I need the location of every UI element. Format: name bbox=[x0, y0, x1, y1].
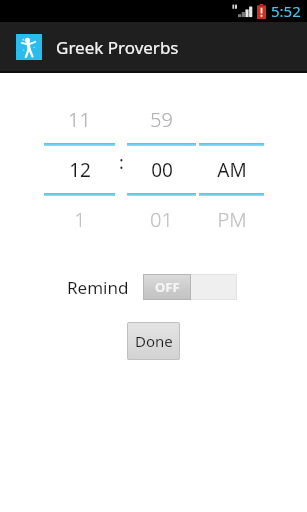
staticText: : bbox=[119, 150, 124, 175]
staticText: 5:52 bbox=[271, 1, 301, 21]
other: App icon bbox=[16, 34, 42, 60]
staticText: 11 bbox=[68, 106, 91, 133]
button[interactable]: Done bbox=[127, 322, 180, 360]
staticText: 12 bbox=[69, 157, 91, 183]
staticText: 1 bbox=[74, 206, 86, 233]
staticText: Greek Proverbs bbox=[56, 36, 179, 59]
button[interactable]: AM PM bbox=[199, 101, 264, 236]
staticText: 00 bbox=[151, 157, 173, 183]
staticText: 01 bbox=[150, 206, 173, 233]
button[interactable]: Minute bbox=[127, 101, 196, 236]
button[interactable]: Remind toggle, off bbox=[143, 274, 237, 300]
staticText: 59 bbox=[150, 106, 173, 133]
staticText: AM bbox=[217, 157, 247, 183]
staticText: Done bbox=[135, 331, 173, 351]
staticText: Remind bbox=[67, 276, 129, 299]
staticText: OFF bbox=[155, 278, 180, 296]
button[interactable]: Hour bbox=[44, 101, 115, 236]
staticText: PM bbox=[217, 206, 247, 233]
